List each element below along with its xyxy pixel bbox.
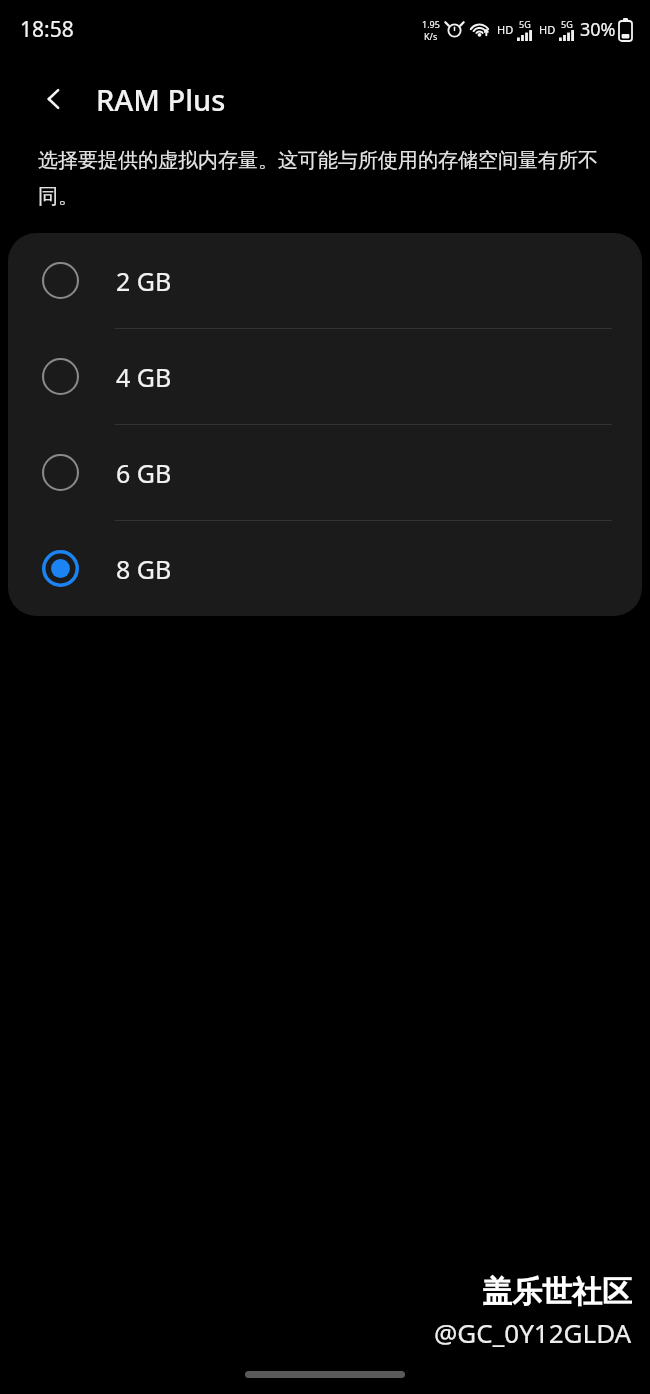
- staticText: 选择要提供的虚拟内存量。这可能与所使用的存储空间量有所不同。: [38, 148, 624, 209]
- staticText: 2 GB: [116, 264, 172, 298]
- button[interactable]: 6 GB: [8, 425, 642, 520]
- staticText: HD: [497, 22, 514, 37]
- staticText: 5G: [519, 18, 531, 30]
- button[interactable]: 8 GB: [8, 521, 642, 616]
- staticText: 6 GB: [116, 456, 172, 490]
- staticText: 盖乐世社区: [482, 1273, 632, 1311]
- button[interactable]: Back: [30, 75, 78, 123]
- staticText: 18:58: [20, 15, 74, 44]
- staticText: @GC_0Y12GLDA: [434, 1315, 632, 1350]
- staticText: 5G: [561, 18, 573, 30]
- staticText: HD: [539, 22, 556, 37]
- button[interactable]: 4 GB: [8, 329, 642, 424]
- staticText: 4 GB: [116, 360, 172, 394]
- staticText: RAM Plus: [96, 80, 226, 119]
- staticText: 30%: [580, 17, 616, 42]
- staticText: 1.95: [422, 18, 440, 30]
- button[interactable]: 2 GB: [8, 233, 642, 328]
- staticText: K/s: [424, 30, 438, 42]
- staticText: 8 GB: [116, 552, 172, 586]
